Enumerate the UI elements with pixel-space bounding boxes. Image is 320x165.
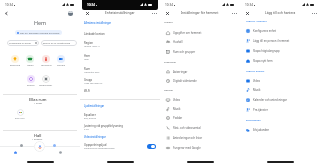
- button[interactable]: Wi-Fi: [84, 89, 164, 93]
- staticText: Anteckningar och listor: [173, 136, 203, 140]
- button[interactable]: Aviseringar: [160, 67, 240, 77]
- button[interactable]: Rum och grupper: [160, 47, 240, 57]
- button[interactable]: Media: [21, 55, 39, 67]
- button[interactable]: Musik: [160, 104, 240, 114]
- staticText: 10:34: [87, 3, 95, 7]
- staticText: Lägg till en person i hemmet: [253, 39, 290, 43]
- button[interactable]: Settings: [58, 150, 63, 155]
- staticText: Hushåll: [173, 40, 183, 44]
- button[interactable]: Assistant: [34, 141, 45, 152]
- staticText: Kamera: [57, 64, 65, 67]
- button[interactable]: Hem: [84, 54, 164, 61]
- button[interactable]: Bjud in en ny hushållsmed: [41, 40, 77, 46]
- button[interactable]: Rutiner: [22, 75, 40, 87]
- button[interactable]: Uppgifter om hemmet: [160, 28, 240, 38]
- button[interactable]: Feed: [19, 143, 24, 148]
- button[interactable]: Skapa högtalargrupp: [240, 46, 320, 56]
- staticText: Sändning vid undertextningar: [84, 147, 115, 150]
- staticText: Musik: [173, 107, 181, 111]
- button[interactable]: Sätt in i adressen Hemma och Borta: [15, 30, 62, 35]
- button[interactable]: Kamera: [52, 55, 70, 67]
- button[interactable]: Close: [244, 10, 250, 16]
- staticText: Aviseringar: [173, 70, 188, 74]
- staticText: Lägg till tjänster: [246, 69, 265, 72]
- button[interactable]: Uppspelningsljud: [84, 143, 156, 150]
- staticText: Fungerar med Google: [173, 146, 201, 150]
- button[interactable]: Justering vid gruppförlyssning: [84, 124, 164, 131]
- button[interactable]: Close: [84, 10, 90, 16]
- staticText: Skapa nytt hem: [253, 59, 273, 63]
- staticText: Wi-Fi: [84, 89, 91, 93]
- staticText: Hem: [34, 19, 47, 26]
- staticText: Termostat: [41, 64, 52, 67]
- staticText: Allmänna inställningar: [84, 21, 112, 24]
- staticText: Grupp: [84, 78, 93, 82]
- button[interactable]: Termostat: [37, 55, 55, 67]
- staticText: Hjulsta 1089-11: [84, 45, 100, 48]
- staticText: 10:34: [245, 3, 253, 7]
- staticText: 1 enhet: [34, 102, 43, 105]
- button[interactable]: Grupp: [84, 78, 164, 85]
- button[interactable]: Poddar: [160, 113, 240, 123]
- button[interactable]: Equalizer: [84, 113, 164, 120]
- staticText: 0 sty: [84, 128, 89, 131]
- button[interactable]: Close: [164, 10, 170, 16]
- button[interactable]: Inställningar: [37, 75, 55, 87]
- staticText: Musik: [253, 88, 261, 92]
- staticText: Allmänt: [164, 21, 173, 24]
- staticText: Video: [253, 79, 261, 83]
- button[interactable]: Fungerar med Google: [160, 143, 240, 153]
- button[interactable]: Belysning: [6, 55, 24, 67]
- staticText: Uppgifter om hemmet: [173, 31, 202, 35]
- button[interactable]: Skapa nytt hem: [240, 56, 320, 66]
- button[interactable]: Digitalt välmående: [160, 76, 240, 86]
- staticText: Hall: [34, 133, 42, 138]
- staticText: Tjänster: [164, 89, 173, 92]
- button[interactable]: Länkade konton: [84, 32, 164, 36]
- button[interactable]: Home: [13, 150, 18, 155]
- staticText: Ellas rum: [29, 97, 47, 102]
- staticText: Nypa fell högtk FF: [84, 82, 103, 85]
- button[interactable]: More options: [231, 10, 237, 16]
- button[interactable]: Ellas rum device: [17, 109, 24, 116]
- button[interactable]: Region: [84, 41, 164, 48]
- staticText: Bjud in en ny hushållsmed: [43, 42, 71, 45]
- button[interactable]: Erbjudanden: [240, 125, 320, 135]
- button[interactable]: Konfigurera enhet: [240, 26, 320, 36]
- staticText: 10:34: [5, 3, 13, 7]
- staticText: Lägsthålls kork: [84, 71, 100, 74]
- button[interactable]: Kalender och anteckningar: [240, 95, 320, 105]
- staticText: Enhetsinställningar: [105, 11, 135, 15]
- staticText: Pre-tjänster: [253, 108, 268, 112]
- staticText: Röst- och videosamtal: [173, 126, 201, 130]
- staticText: Bas, distorti: [84, 117, 97, 120]
- staticText: Videoinställningar: [84, 135, 106, 138]
- staticText: Lägg till och hantera: [265, 11, 296, 15]
- staticText: Uppspelningsljud: [84, 143, 107, 147]
- button[interactable]: Video: [160, 95, 240, 105]
- button[interactable]: Video: [240, 76, 320, 86]
- button[interactable]: Musik: [240, 85, 320, 95]
- staticText: 10:34: [165, 3, 173, 7]
- button[interactable]: Hushåll: [160, 37, 240, 47]
- staticText: 1 enheter: [32, 138, 43, 141]
- staticText: Kalender och anteckningar: [253, 98, 287, 102]
- button[interactable]: Röst- och videosamtal: [160, 123, 240, 133]
- button[interactable]: Pre-tjänster: [240, 105, 320, 115]
- staticText: Inställningar för hemmet: [181, 11, 219, 15]
- staticText: Rutiner: [27, 84, 35, 87]
- staticText: Rum och grupper: [173, 50, 196, 54]
- button[interactable]: More options: [151, 10, 157, 16]
- button[interactable]: Lägg till en person i hemmet: [240, 36, 320, 46]
- button[interactable]: Back: [3, 10, 10, 17]
- staticText: Skapa högtalargrupp: [253, 49, 280, 53]
- staticText: Rum: [84, 67, 90, 71]
- button[interactable]: Rum: [84, 67, 164, 74]
- staticText: Justering vid gruppförlyssning: [84, 124, 123, 128]
- button[interactable]: More options: [311, 10, 317, 16]
- button[interactable]: Anteckningar och listor: [160, 133, 240, 143]
- staticText: Ellas rum: [15, 117, 25, 120]
- button[interactable]: Devices: [52, 143, 57, 148]
- button[interactable]: Konfigurera ny enhet: [7, 40, 39, 46]
- button[interactable]: Account: [68, 11, 73, 16]
